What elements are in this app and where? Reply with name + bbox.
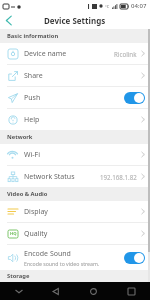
staticText: Help [24, 115, 40, 125]
button[interactable]: Share [0, 65, 150, 86]
staticText: Basic information [7, 32, 59, 40]
staticText: °C [105, 4, 110, 9]
staticText: Device Settings [44, 15, 106, 26]
staticText: Push [24, 93, 41, 103]
button[interactable]: Device name [0, 43, 150, 64]
button[interactable]: Encode Sound [0, 245, 150, 270]
button[interactable]: Back [0, 12, 17, 29]
button[interactable]: Recents [112, 282, 150, 300]
staticText: Quality [24, 229, 48, 239]
staticText: HQ [10, 231, 17, 237]
button[interactable]: Push [0, 87, 150, 108]
staticText: Wi-Fi [24, 150, 41, 160]
staticText: Display [24, 207, 48, 217]
staticText: Encode sound to video stream. [24, 260, 100, 267]
staticText: Device name [24, 49, 67, 59]
staticText: 04:07 [131, 2, 147, 10]
button[interactable]: Network Status [0, 166, 150, 187]
staticText: Video & Audio [7, 190, 48, 198]
button[interactable]: HQ [0, 223, 150, 244]
button[interactable]: Help [0, 109, 150, 130]
staticText: Network [7, 133, 33, 141]
button[interactable]: Toggle on [124, 252, 145, 264]
staticText: Network Status [24, 172, 75, 182]
button[interactable]: Hide keyboard [0, 282, 37, 300]
button[interactable]: Home [74, 282, 112, 300]
staticText: Encode Sound [24, 249, 71, 259]
staticText: Ricolink [114, 50, 137, 58]
staticText: 192.168.1.82 [100, 173, 137, 181]
staticText: Share [24, 71, 43, 81]
button[interactable]: Toggle on [124, 92, 145, 104]
button[interactable]: Display [0, 201, 150, 222]
button[interactable]: Wi-Fi [0, 144, 150, 165]
staticText: Storage [7, 272, 30, 280]
button[interactable]: Back [37, 282, 74, 300]
